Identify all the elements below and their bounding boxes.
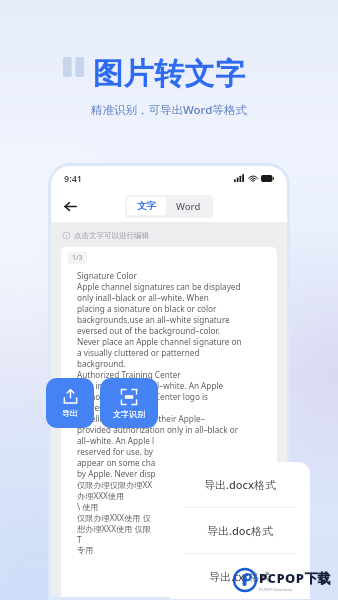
staticText: background. <box>77 358 126 369</box>
staticText: 导出.doc格式 <box>207 523 273 538</box>
staticText: 1/3 <box>72 253 83 263</box>
staticText: Resellers can display their Apple– <box>77 413 205 424</box>
button[interactable]: 文字 <box>127 197 166 215</box>
staticText: 办理XXX使用 <box>77 490 125 501</box>
staticText: 仅限办理仅限办理XX <box>77 479 153 490</box>
staticText: 仅限办理XXX使用 仅 <box>77 512 151 523</box>
staticText: old reserved for use. <box>77 402 157 413</box>
staticText: PCPOP Download <box>259 587 292 592</box>
button[interactable]: Back <box>58 194 82 218</box>
staticText: 文字识别 <box>113 409 145 419</box>
staticText: Apple channel signatures can be displaye… <box>77 281 241 292</box>
staticText: placing a sionature on black or color <box>77 303 217 314</box>
staticText: appear on some cha <box>77 457 156 468</box>
staticText: Authorized Training Center logo is <box>77 391 208 402</box>
button[interactable]: 导出.txt格式 <box>170 554 310 599</box>
staticText: only inall–black or all–white. When <box>77 292 209 303</box>
button[interactable]: 文字识别 <box>100 378 158 428</box>
staticText: 文字 <box>137 200 156 212</box>
staticText: 专用 <box>77 545 94 555</box>
staticText: Word <box>176 200 201 213</box>
button[interactable]: Word <box>166 197 211 216</box>
staticText: a visually cluttered or patterned <box>77 347 200 358</box>
staticText: all–white. An Apple l <box>77 435 155 446</box>
staticText: 精准识别，可导出Word等格式 <box>91 102 247 118</box>
staticText: Authorized Training Center <box>77 369 181 380</box>
staticText: 9:41 <box>64 172 82 184</box>
button[interactable]: 导出.docx格式 <box>170 462 310 507</box>
staticText: 图片转文字 <box>93 55 246 93</box>
staticText: 想办理XXX使用 仅限 <box>77 523 151 534</box>
staticText: 导出.docx格式 <box>204 477 276 492</box>
button[interactable]: 导出.doc格式 <box>170 508 310 553</box>
staticText: 导出 <box>62 408 78 418</box>
staticText: T <box>77 534 82 545</box>
button[interactable]: 导出 <box>46 378 94 428</box>
staticText: only in all–black or all–white. An Apple <box>77 380 224 391</box>
staticText: eversed out of the background–color. <box>77 325 220 336</box>
staticText: provided authorization only in all–black… <box>77 424 239 435</box>
staticText: 点击文字可以进行编辑 <box>74 231 149 240</box>
staticText: reserved for use. by <box>77 446 153 457</box>
staticText: Never place an Apple channel signature o… <box>77 336 242 347</box>
staticText: backgrounds,use an all–white signature <box>77 314 230 325</box>
staticText: 导出.txt格式 <box>209 569 271 584</box>
staticText: by Apple. Never disp <box>77 468 156 479</box>
staticText: Signature Color <box>77 270 137 281</box>
staticText: PCPOP下载 <box>259 569 332 587</box>
staticText: \ 使用 <box>77 501 99 512</box>
